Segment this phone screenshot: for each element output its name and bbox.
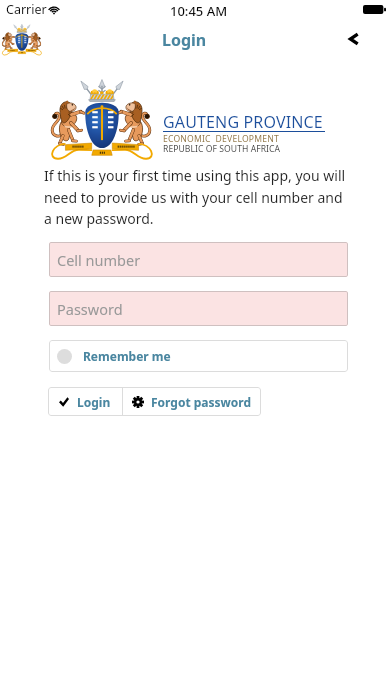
staticText: Forgot password: [151, 394, 252, 410]
button[interactable]: Remember me: [49, 340, 348, 372]
staticText: Remember me: [83, 348, 171, 364]
staticText: REPUBLIC OF SOUTH AFRICA: [163, 143, 281, 155]
button[interactable]: Login: [48, 387, 122, 416]
staticText: Login: [162, 29, 207, 51]
staticText: 10:45 AM: [170, 2, 228, 20]
staticText: ECONOMIC DEVELOPMENT: [163, 133, 279, 145]
button[interactable]: Back: [335, 23, 371, 55]
staticText: Cell number: [57, 250, 141, 270]
button[interactable]: Forgot password: [123, 387, 261, 416]
staticText: Login: [77, 394, 111, 410]
button[interactable]: Password: [49, 291, 348, 326]
staticText: Password: [57, 299, 123, 319]
staticText: If this is your first time using this ap…: [44, 166, 352, 228]
staticText: GAUTENG PROVINCE: [163, 111, 323, 133]
button[interactable]: Cell number: [49, 242, 348, 277]
staticText: Carrier: [6, 1, 47, 18]
